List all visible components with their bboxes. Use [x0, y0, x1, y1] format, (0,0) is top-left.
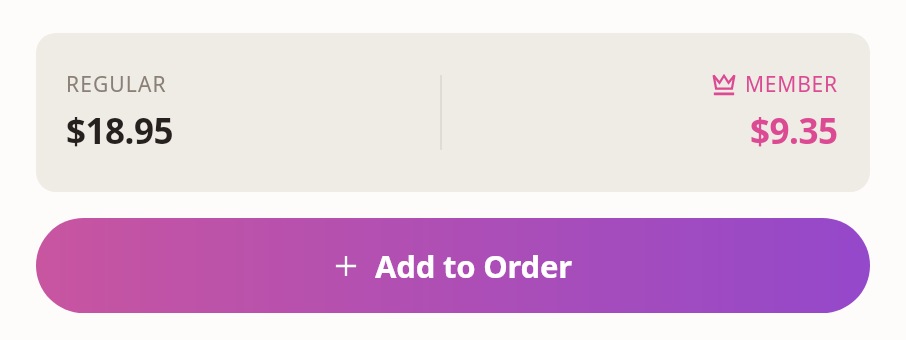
staticText: $9.35	[750, 107, 838, 155]
staticText: REGULAR	[66, 70, 167, 99]
other: Member	[711, 74, 737, 96]
button[interactable]: Add to Order	[36, 218, 870, 313]
staticText: MEMBER	[745, 70, 838, 99]
staticText: Add to Order	[375, 245, 572, 287]
staticText: $18.95	[66, 107, 173, 155]
button[interactable]: REGULAR	[36, 33, 870, 192]
